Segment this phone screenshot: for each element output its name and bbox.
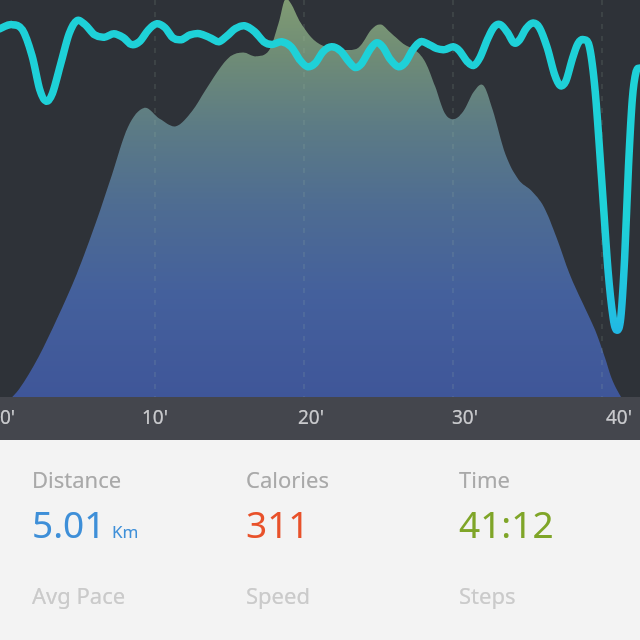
staticText: 311 [246, 498, 310, 548]
staticText: 41:12 [459, 498, 554, 548]
button[interactable]: Workout pace and elevation chart [0, 0, 640, 440]
staticText: Avg Pace [32, 580, 126, 610]
staticText: 20' [298, 404, 325, 430]
staticText: Km [112, 520, 139, 543]
button[interactable]: Steps [427, 580, 640, 610]
button[interactable]: Speed [214, 580, 427, 610]
button[interactable]: Time [427, 464, 640, 548]
staticText: 40' [606, 404, 633, 430]
staticText: 5.01 [32, 498, 106, 548]
staticText: Speed [246, 580, 310, 610]
staticText: 10' [142, 404, 169, 430]
staticText: 0' [0, 404, 16, 430]
staticText: 30' [452, 404, 479, 430]
staticText: Time [459, 464, 510, 494]
button[interactable]: Distance [0, 464, 214, 548]
staticText: Distance [32, 464, 122, 494]
button[interactable]: Avg Pace [0, 580, 214, 610]
staticText: Calories [246, 464, 329, 494]
staticText: Steps [459, 580, 516, 610]
button[interactable]: Calories [214, 464, 427, 548]
